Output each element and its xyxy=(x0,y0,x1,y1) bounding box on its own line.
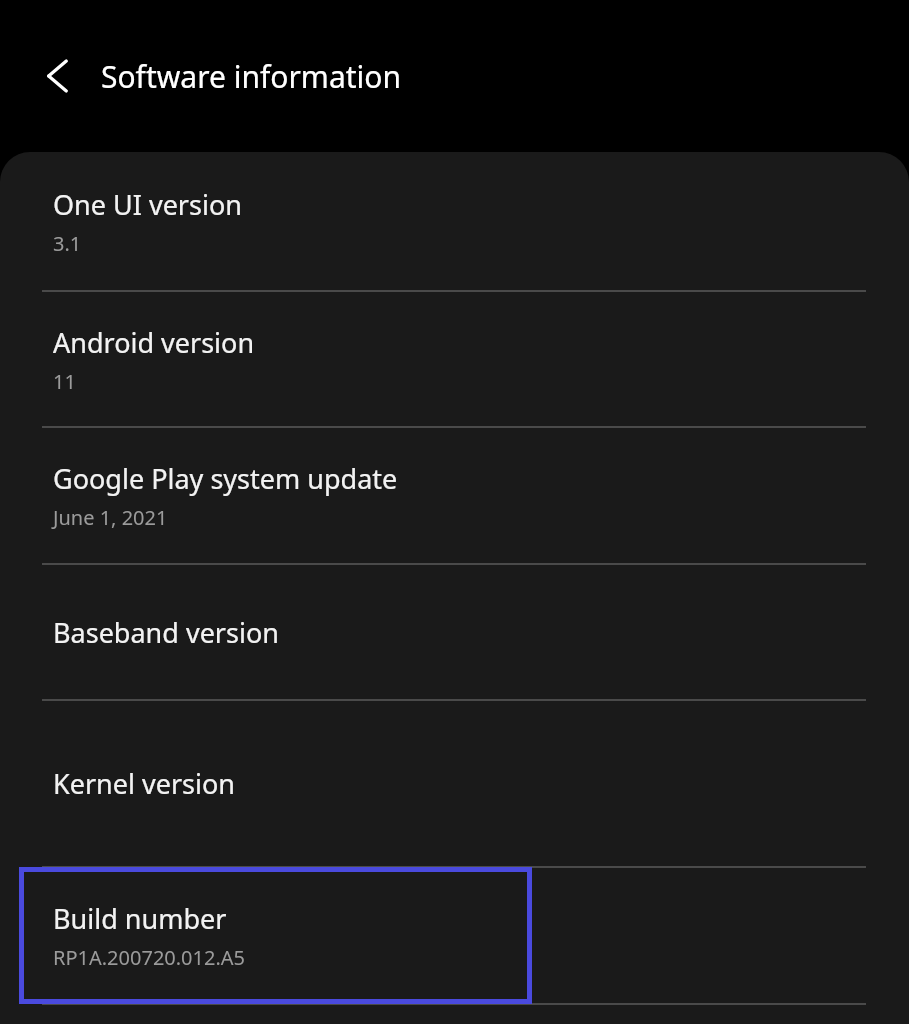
button[interactable]: Kernel version xyxy=(0,701,909,866)
button[interactable]: Android version xyxy=(0,292,909,426)
staticText: Build number xyxy=(53,900,227,937)
staticText: 3.1 xyxy=(53,230,82,257)
staticText: Kernel version xyxy=(53,765,236,802)
button[interactable]: Back xyxy=(34,49,88,103)
button[interactable]: One UI version xyxy=(0,152,909,290)
button[interactable]: Baseband version xyxy=(0,565,909,699)
staticText: June 1, 2021 xyxy=(53,504,168,531)
button[interactable]: Google Play system update xyxy=(0,428,909,563)
staticText: One UI version xyxy=(53,186,242,223)
staticText: Baseband version xyxy=(53,614,279,651)
staticText: 11 xyxy=(53,368,76,395)
button[interactable]: Build number xyxy=(0,868,909,1003)
staticText: Google Play system update xyxy=(53,460,398,497)
staticText: Android version xyxy=(53,324,255,361)
staticText: Software information xyxy=(101,56,401,97)
staticText: RP1A.200720.012.A5 xyxy=(53,944,246,971)
